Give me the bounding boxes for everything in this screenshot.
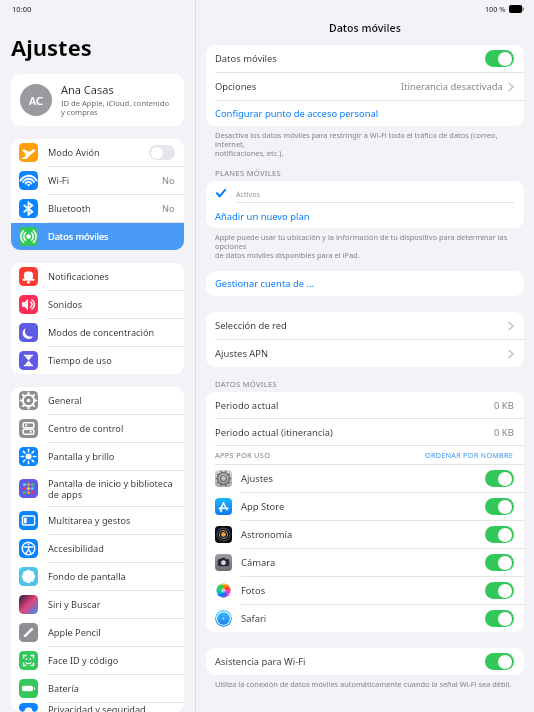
button[interactable]: Tiempo de uso (11, 347, 184, 374)
button[interactable]: Toggle (485, 526, 514, 543)
button[interactable]: Notificaciones (11, 263, 184, 290)
button[interactable]: General (11, 387, 184, 414)
staticText: Modo Avión (48, 146, 149, 159)
staticText: Datos móviles (48, 230, 175, 243)
staticText: APPS POR USO (215, 450, 425, 460)
staticText: App Store (241, 500, 485, 513)
button[interactable]: Centro de control (11, 415, 184, 442)
staticText: ID de Apple, iCloud, contenido y compras (61, 98, 170, 118)
staticText: Fondo de pantalla (48, 570, 175, 583)
button[interactable]: Toggle (485, 498, 514, 515)
button[interactable]: Astronomía (206, 521, 524, 548)
button[interactable]: Toggle (485, 50, 514, 67)
staticText: Utiliza la conexión de datos móviles aut… (215, 679, 512, 689)
button[interactable]: Configurar punto de acceso personal (206, 101, 524, 126)
staticText: Asistencia para Wi-Fi (215, 655, 485, 668)
staticText: Pantalla de inicio y biblioteca de apps (48, 477, 175, 501)
staticText: Fotos (241, 584, 485, 597)
staticText: Datos móviles (329, 21, 401, 35)
button[interactable]: Siri y Buscar (11, 591, 184, 618)
staticText: Apple Pencil (48, 626, 175, 639)
button[interactable]: Periodo actual (itinerancia) (206, 419, 524, 445)
button[interactable]: AC (11, 74, 184, 126)
button[interactable]: Fotos (206, 577, 524, 604)
button[interactable]: Gestionar cuenta de ... (206, 271, 524, 296)
staticText: Opciones (215, 80, 401, 93)
staticText: Siri y Buscar (48, 598, 175, 611)
button[interactable]: Toggle (149, 145, 175, 160)
button[interactable]: Pantalla y brillo (11, 443, 184, 470)
button[interactable]: Sonidos (11, 291, 184, 318)
button[interactable]: Toggle (485, 554, 514, 571)
staticText: Astronomía (241, 528, 485, 541)
staticText: Activos (236, 189, 260, 199)
button[interactable]: Opciones (206, 73, 524, 100)
staticText: Periodo actual (itinerancia) (215, 426, 494, 439)
button[interactable]: Privacidad y seguridad (11, 703, 184, 712)
staticText: Wi-Fi (48, 174, 162, 187)
staticText: Ajustes APN (215, 347, 508, 360)
button[interactable]: Periodo actual (206, 392, 524, 418)
staticText: Gestionar cuenta de ... (215, 277, 514, 290)
button[interactable]: Accesibilidad (11, 535, 184, 562)
staticText: 0 KB (494, 399, 514, 412)
staticText: Centro de control (48, 422, 175, 435)
staticText: Tiempo de uso (48, 354, 175, 367)
button[interactable]: Safari (206, 605, 524, 632)
button[interactable]: Datos móviles (206, 45, 524, 72)
staticText: Notificaciones (48, 270, 175, 283)
staticText: Batería (48, 682, 175, 695)
staticText: Itinerancia desactivada (401, 80, 503, 93)
staticText: Datos móviles (215, 52, 485, 65)
staticText: No (162, 202, 175, 215)
staticText: AC (29, 93, 43, 108)
button[interactable]: Face ID y código (11, 647, 184, 674)
staticText: Modos de concentración (48, 326, 175, 339)
staticText: Accesibilidad (48, 542, 175, 555)
staticText: Desactiva los datos móviles para restrin… (215, 130, 512, 158)
staticText: No (162, 174, 175, 187)
staticText: ORDENAR POR NOMBRE (425, 450, 514, 460)
staticText: Periodo actual (215, 399, 494, 412)
staticText: Safari (241, 612, 485, 625)
staticText: 10:00 (12, 4, 32, 14)
button[interactable]: Añadir un nuevo plan (206, 205, 524, 228)
button[interactable]: Ajustes (206, 465, 524, 492)
button[interactable]: Cámara (206, 549, 524, 576)
staticText: Apple puede usar tu ubicación y la infor… (215, 232, 512, 260)
button[interactable]: Asistencia para Wi-Fi (206, 648, 524, 675)
staticText: Configurar punto de acceso personal (215, 107, 514, 120)
button[interactable]: Multitarea y gestos (11, 507, 184, 534)
button[interactable]: Datos móviles (11, 223, 184, 250)
button[interactable]: Activos (206, 181, 524, 205)
button[interactable]: Toggle (485, 470, 514, 487)
button[interactable]: Toggle (485, 582, 514, 599)
button[interactable]: Apple Pencil (11, 619, 184, 646)
staticText: Ana Casas (61, 82, 114, 97)
staticText: PLANES MÓVILES (215, 168, 514, 178)
button[interactable]: Selección de red (206, 312, 524, 339)
button[interactable]: Modos de concentración (11, 319, 184, 346)
staticText: Ajustes (241, 472, 485, 485)
button[interactable]: App Store (206, 493, 524, 520)
staticText: Añadir un nuevo plan (215, 210, 514, 223)
staticText: Sonidos (48, 298, 175, 311)
staticText: Cámara (241, 556, 485, 569)
button[interactable]: Modo Avión (11, 139, 184, 166)
button[interactable]: Ajustes APN (206, 340, 524, 367)
button[interactable]: Bluetooth (11, 195, 184, 222)
button[interactable]: APPS POR USO (206, 446, 524, 464)
staticText: Ajustes (11, 32, 92, 62)
staticText: Pantalla y brillo (48, 450, 175, 463)
staticText: Selección de red (215, 319, 508, 332)
staticText: DATOS MÓVILES (215, 379, 514, 389)
button[interactable]: Fondo de pantalla (11, 563, 184, 590)
button[interactable]: Wi-Fi (11, 167, 184, 194)
button[interactable]: Toggle (485, 610, 514, 627)
button[interactable]: Batería (11, 675, 184, 702)
button[interactable]: Toggle (485, 653, 514, 670)
staticText: Face ID y código (48, 654, 175, 667)
staticText: Multitarea y gestos (48, 514, 175, 527)
button[interactable]: Pantalla de inicio y biblioteca de apps (11, 471, 184, 506)
staticText: 0 KB (494, 426, 514, 439)
